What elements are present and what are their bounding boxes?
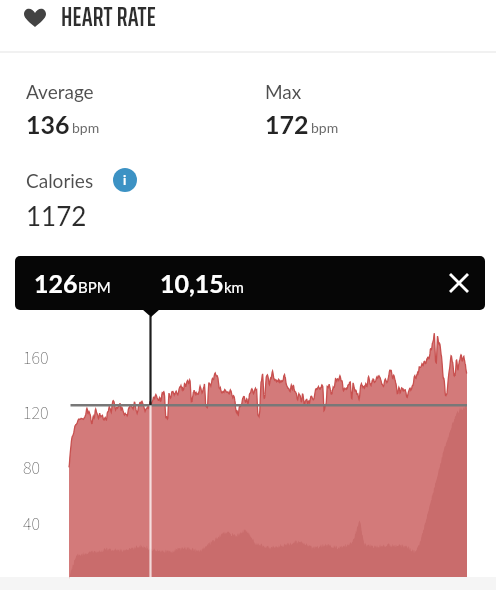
staticText: bpm bbox=[311, 119, 339, 136]
staticText: i bbox=[123, 172, 127, 188]
staticText: 80 bbox=[23, 456, 40, 482]
staticText: km bbox=[224, 278, 244, 296]
staticText: 126 bbox=[34, 268, 78, 298]
button[interactable]: HEART RATE bbox=[0, 0, 496, 50]
staticText: Average bbox=[26, 80, 94, 103]
staticText: 172 bbox=[265, 109, 309, 139]
staticText: 40 bbox=[23, 512, 40, 538]
staticText: HEART RATE bbox=[61, 0, 157, 37]
staticText: bpm bbox=[72, 119, 100, 136]
staticText: 1172 bbox=[26, 200, 87, 231]
button[interactable]: 126 bbox=[15, 256, 485, 310]
staticText: 10,15 bbox=[160, 268, 224, 298]
staticText: 136 bbox=[26, 109, 70, 139]
button[interactable]: Close bbox=[441, 265, 477, 301]
button[interactable]: Calories info bbox=[113, 168, 137, 192]
staticText: BPM bbox=[78, 278, 111, 296]
staticText: Max bbox=[265, 80, 302, 103]
staticText: 160 bbox=[23, 346, 49, 372]
staticText: 120 bbox=[23, 401, 49, 427]
staticText: Calories bbox=[26, 169, 94, 192]
